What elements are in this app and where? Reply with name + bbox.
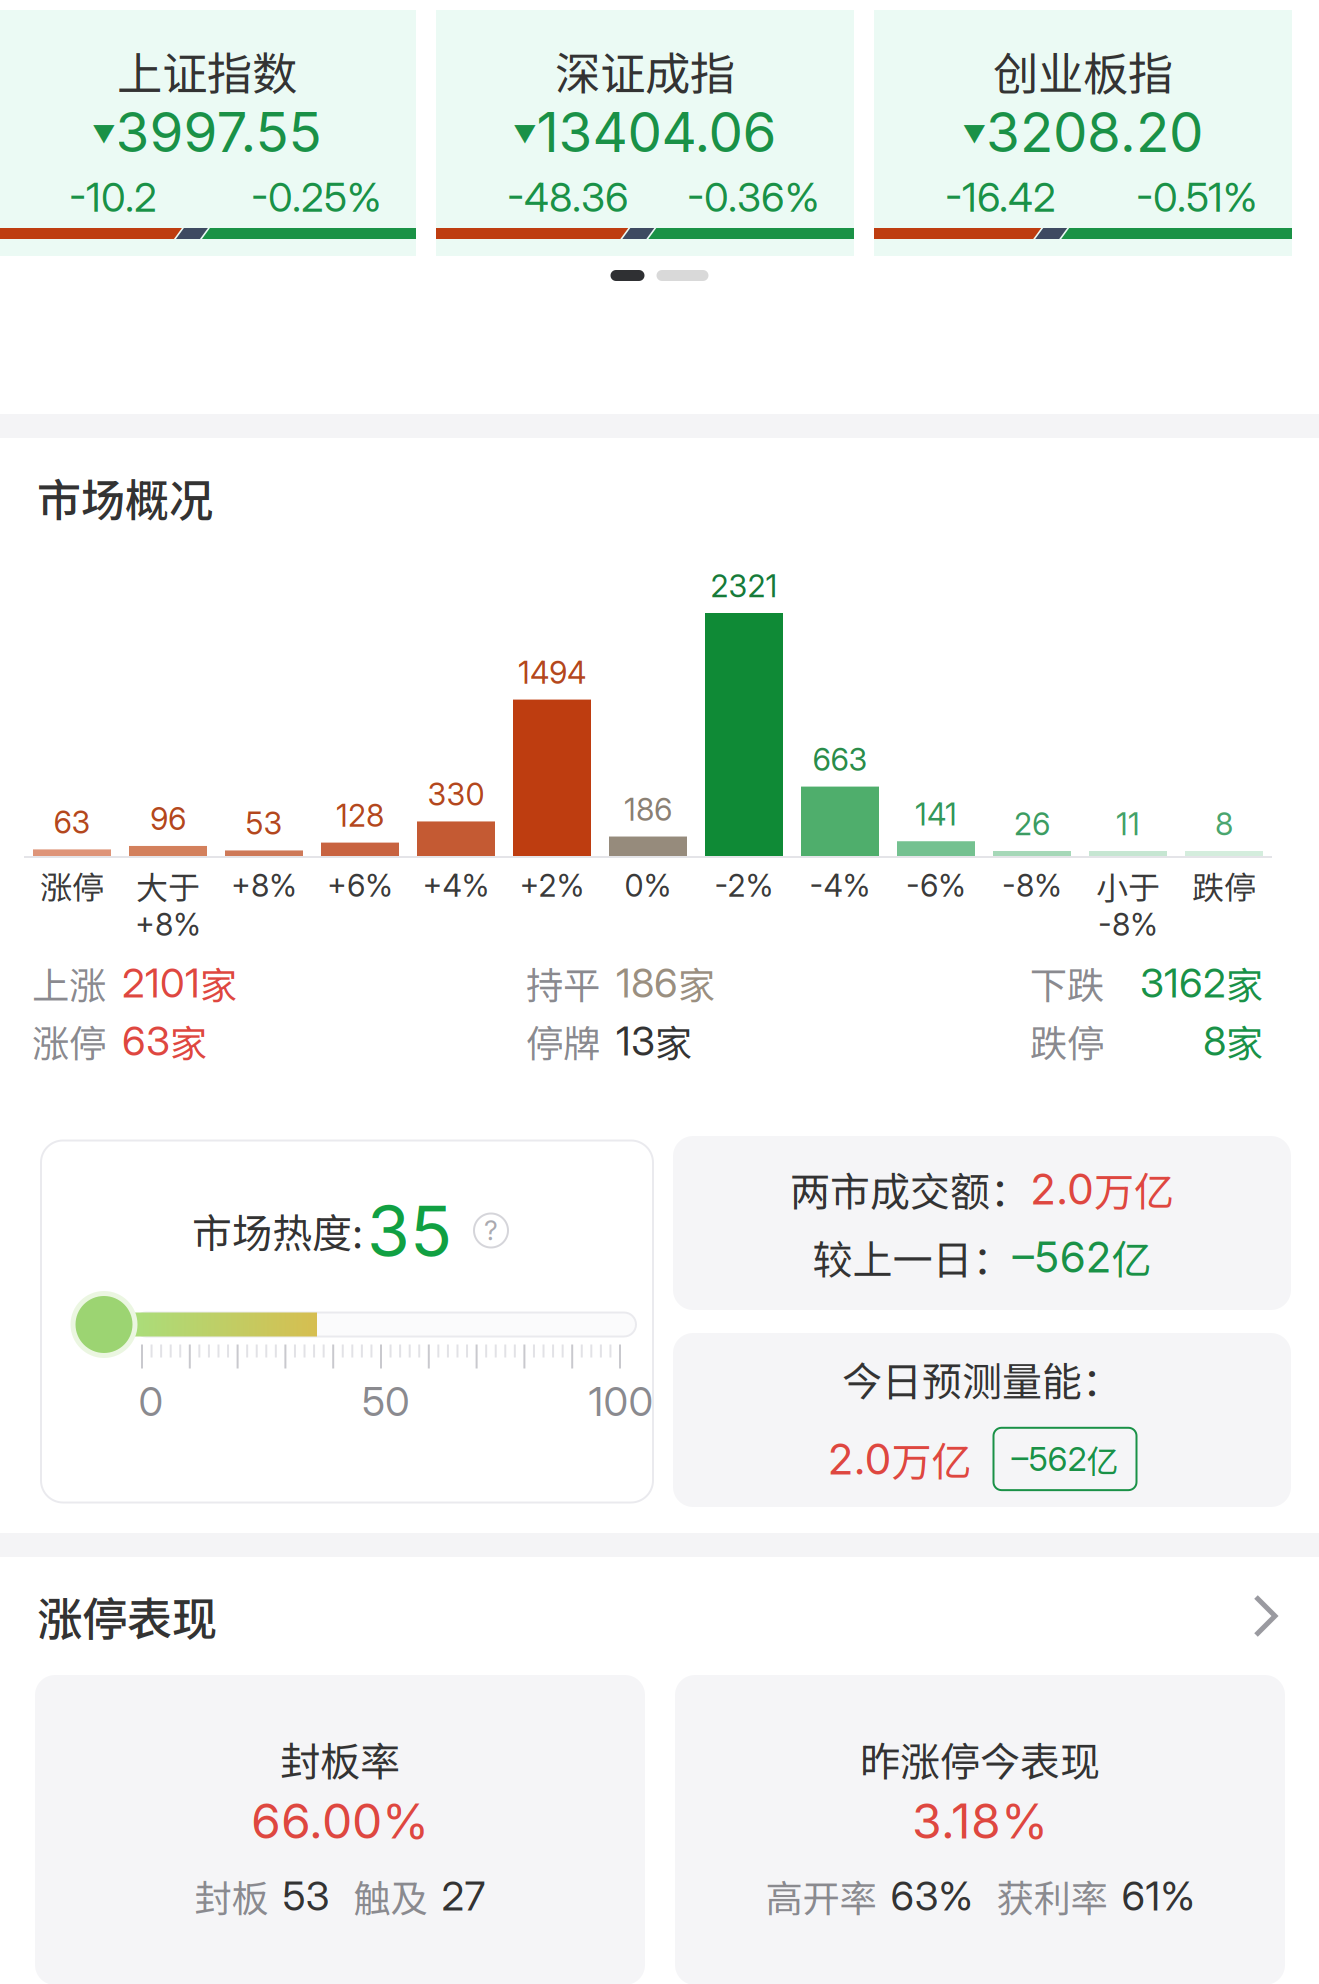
staticText: 2.0 xyxy=(1030,1163,1094,1215)
staticText: 186 xyxy=(616,959,678,1007)
staticText: 涨停表现 xyxy=(37,1583,217,1649)
staticText: 8 xyxy=(1203,1017,1226,1065)
staticText: 今日预测量能： xyxy=(842,1350,1122,1408)
staticText: 亿 xyxy=(1086,1436,1118,1482)
staticText: 封板 xyxy=(194,1869,268,1923)
button[interactable]: 上证指数 xyxy=(26,10,444,256)
staticText: 跌停 xyxy=(1192,862,1256,909)
button[interactable]: 创业板指 xyxy=(902,10,1319,256)
staticText: 63% xyxy=(890,1872,972,1920)
staticText: 50 xyxy=(362,1377,410,1426)
staticText: 66.00% xyxy=(251,1792,429,1850)
staticText: 0 xyxy=(138,1377,163,1426)
staticText: 663 xyxy=(812,741,867,778)
staticText: 较上一日： xyxy=(812,1228,1012,1286)
staticText: 涨停 xyxy=(32,1014,106,1068)
staticText: 家 xyxy=(1226,956,1263,1010)
staticText: ▼ xyxy=(963,116,986,148)
staticText: 家 xyxy=(200,956,237,1010)
staticText: 停牌 xyxy=(526,1014,600,1068)
staticText: 35 xyxy=(367,1189,452,1272)
staticText: ? xyxy=(484,1214,498,1247)
button[interactable]: 昨涨停今表现 xyxy=(675,1675,1285,1984)
staticText: 上涨 xyxy=(32,956,106,1010)
staticText: +8% xyxy=(231,867,297,904)
staticText: 家 xyxy=(678,956,715,1010)
staticText: 27 xyxy=(441,1872,485,1920)
staticText: -0.25% xyxy=(251,173,381,221)
staticText: 63 xyxy=(53,804,90,841)
staticText: 0% xyxy=(624,867,671,904)
staticText: 13 xyxy=(616,1017,655,1065)
staticText: 3.18% xyxy=(912,1792,1048,1850)
staticText: +8% xyxy=(135,906,201,943)
staticText: -2% xyxy=(714,867,773,904)
staticText: -48.36 xyxy=(507,173,629,221)
staticText: 大于 xyxy=(136,862,200,909)
staticText: 小于 xyxy=(1096,862,1160,909)
staticText: 100 xyxy=(588,1377,653,1426)
staticText: -6% xyxy=(906,867,966,904)
staticText: 61% xyxy=(1121,1872,1194,1920)
button[interactable]: 涨停表现 xyxy=(0,1557,1319,1675)
staticText: +4% xyxy=(422,867,489,904)
staticText: 13404.06 xyxy=(536,99,776,165)
staticText: 亿 xyxy=(1111,1228,1151,1286)
staticText: -16.42 xyxy=(945,173,1056,221)
staticText: 触及 xyxy=(353,1869,427,1923)
staticText: 3997.55 xyxy=(115,99,321,165)
staticText: 跌停 xyxy=(1030,1014,1104,1068)
staticText: 186 xyxy=(624,791,672,828)
staticText: 创业板指 xyxy=(993,38,1173,104)
staticText: 万亿 xyxy=(1094,1160,1174,1218)
staticText: 上证指数 xyxy=(117,38,297,104)
staticText: -0.36% xyxy=(687,173,819,221)
staticText: +6% xyxy=(327,867,393,904)
staticText: -8% xyxy=(1098,906,1158,943)
staticText: 两市成交额： xyxy=(790,1160,1030,1218)
staticText: 8 xyxy=(1215,805,1233,842)
staticText: –562 xyxy=(1011,1439,1086,1479)
staticText: 家 xyxy=(1226,1014,1263,1068)
staticText: 昨涨停今表现 xyxy=(860,1730,1100,1788)
staticText: 深证成指 xyxy=(555,38,735,104)
staticText: 持平 xyxy=(526,956,600,1010)
staticText: 1494 xyxy=(518,654,586,691)
staticText: ▼ xyxy=(92,116,115,148)
button[interactable]: 深证成指 xyxy=(464,10,882,256)
staticText: 53 xyxy=(282,1872,329,1920)
staticText: 3208.20 xyxy=(986,99,1203,165)
staticText: 53 xyxy=(245,805,282,842)
staticText: 万亿 xyxy=(891,1430,971,1488)
staticText: 11 xyxy=(1116,805,1140,842)
staticText: 市场热度: xyxy=(192,1201,363,1259)
staticText: 330 xyxy=(427,776,484,813)
staticText: -10.2 xyxy=(69,173,157,221)
staticText: +2% xyxy=(519,867,584,904)
staticText: 128 xyxy=(336,797,384,834)
staticText: 141 xyxy=(915,796,957,833)
staticText: 家 xyxy=(655,1014,692,1068)
staticText: 63 xyxy=(122,1017,170,1065)
staticText: -4% xyxy=(809,867,870,904)
staticText: 2101 xyxy=(122,959,200,1007)
staticText: -8% xyxy=(1002,867,1062,904)
staticText: 3162 xyxy=(1140,959,1226,1007)
staticText: 获利率 xyxy=(996,1869,1107,1923)
staticText: ▼ xyxy=(513,116,536,148)
staticText: 下跌 xyxy=(1030,956,1104,1010)
button[interactable]: 封板率 xyxy=(35,1675,645,1984)
staticText: 26 xyxy=(1014,805,1050,842)
staticText: 96 xyxy=(150,800,186,837)
staticText: 2.0 xyxy=(827,1433,891,1485)
